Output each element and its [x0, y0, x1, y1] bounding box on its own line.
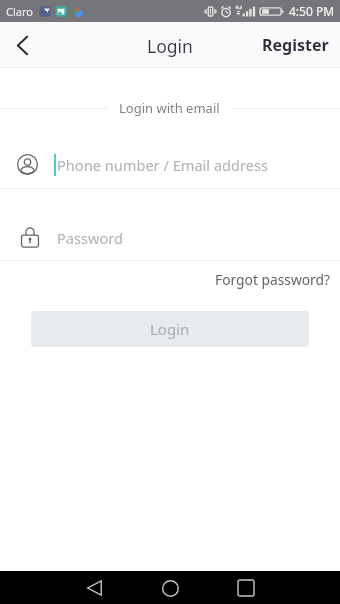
- staticText: Login: [147, 34, 193, 58]
- staticText: Password: [57, 228, 124, 248]
- button[interactable]: Back: [78, 572, 110, 604]
- staticText: Register: [262, 34, 329, 56]
- staticText: Phone number / Email address: [57, 155, 269, 175]
- button[interactable]: Back: [0, 23, 44, 67]
- button[interactable]: Login: [31, 311, 309, 347]
- staticText: 4:50 PM: [289, 3, 335, 19]
- staticText: Login with email: [119, 99, 220, 117]
- button[interactable]: Recents: [230, 572, 262, 604]
- staticText: Login: [150, 319, 190, 339]
- button[interactable]: Forgot password?: [210, 268, 335, 291]
- button[interactable]: Register: [250, 24, 340, 66]
- button[interactable]: Password: [0, 215, 340, 260]
- button[interactable]: Phone number / Email address: [0, 141, 340, 188]
- staticText: Forgot password?: [215, 270, 330, 289]
- staticText: Claro: [6, 4, 33, 19]
- button[interactable]: Home: [154, 572, 186, 604]
